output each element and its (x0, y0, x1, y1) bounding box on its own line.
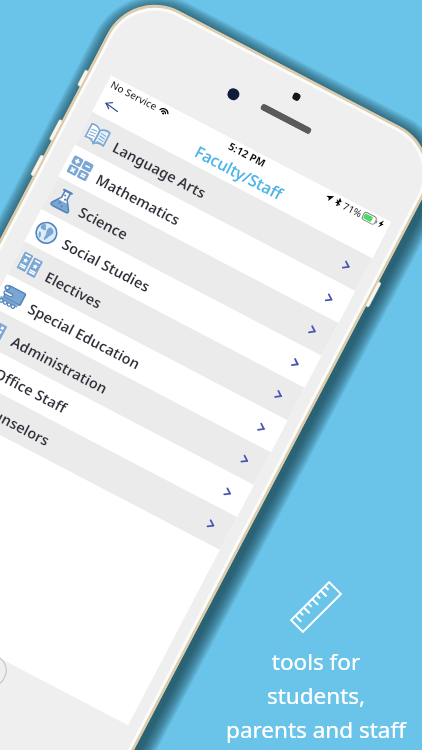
staticText: No Service (109, 77, 160, 112)
staticText: Faculty/Staff (191, 141, 287, 205)
staticText: 71% (341, 199, 365, 219)
button[interactable]: Counselors (0, 371, 237, 550)
staticText: 5:12 PM (227, 139, 269, 169)
staticText: Special Education (25, 298, 144, 373)
button[interactable]: Electives (7, 241, 305, 420)
staticText: tools for students, parents and staff (226, 646, 406, 744)
button[interactable]: Social Studies (25, 209, 321, 388)
staticText: Electives (42, 266, 106, 313)
staticText: Science (75, 202, 132, 244)
button[interactable]: Special Education (0, 274, 287, 452)
button[interactable]: Office Staff (0, 339, 254, 517)
staticText: Counselors (0, 396, 53, 450)
staticText: Administration (8, 331, 111, 398)
button[interactable]: Back (94, 89, 130, 124)
staticText: Office Staff (0, 363, 70, 417)
staticText: Social Studies (59, 233, 154, 296)
button[interactable]: Administration (0, 306, 271, 485)
staticText: Language Arts (109, 137, 210, 202)
button[interactable]: Mathematics (58, 145, 355, 323)
staticText: Mathematics (93, 169, 184, 230)
button[interactable]: Language Arts (75, 112, 372, 291)
button[interactable]: Science (41, 176, 338, 356)
